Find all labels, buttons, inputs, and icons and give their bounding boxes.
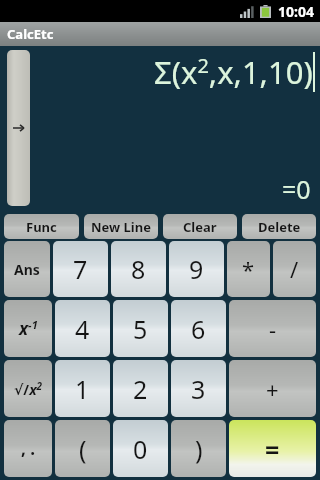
button[interactable]: = bbox=[229, 420, 316, 477]
staticText: * bbox=[242, 254, 255, 284]
staticText: 8 bbox=[131, 252, 146, 286]
staticText: 3 bbox=[191, 372, 206, 406]
staticText: + bbox=[266, 374, 279, 404]
button[interactable]: x-1 bbox=[4, 300, 52, 357]
button[interactable]: 2 bbox=[113, 360, 168, 417]
staticText: Delete bbox=[258, 218, 301, 236]
staticText: / bbox=[290, 254, 299, 284]
button[interactable]: Clear bbox=[163, 214, 237, 239]
staticText: =0 bbox=[282, 172, 311, 206]
staticText: 2 bbox=[133, 372, 148, 406]
button[interactable]: 5 bbox=[113, 300, 168, 357]
staticText: 4 bbox=[75, 312, 90, 346]
button[interactable]: 0 bbox=[113, 420, 168, 477]
button[interactable]: ) bbox=[171, 420, 226, 477]
staticText: √/x2 bbox=[14, 379, 43, 399]
button[interactable]: - bbox=[229, 300, 316, 357]
button[interactable]: ( bbox=[55, 420, 110, 477]
staticText: ) bbox=[195, 432, 203, 466]
button[interactable]: Ans bbox=[4, 241, 50, 297]
staticText: 9 bbox=[189, 252, 204, 286]
staticText: 7 bbox=[73, 252, 88, 286]
staticText: 0 bbox=[133, 432, 148, 466]
button[interactable]: 9 bbox=[169, 241, 224, 297]
staticText: ( bbox=[79, 432, 87, 466]
button[interactable]: Scroll right bbox=[7, 50, 30, 206]
staticText: 1 bbox=[75, 372, 90, 406]
staticText: 10:04 bbox=[278, 2, 314, 21]
button[interactable]: 8 bbox=[111, 241, 166, 297]
staticText: Σ(x2,x,1,10) bbox=[154, 51, 313, 93]
staticText: = bbox=[265, 432, 280, 466]
button[interactable]: , . bbox=[4, 420, 52, 477]
staticText: 5 bbox=[133, 312, 148, 346]
staticText: x-1 bbox=[19, 317, 38, 340]
button[interactable]: Delete bbox=[242, 214, 316, 239]
staticText: , . bbox=[21, 437, 36, 460]
staticText: Func bbox=[26, 218, 57, 236]
staticText: CalcEtc bbox=[7, 25, 54, 43]
button[interactable]: * bbox=[227, 241, 270, 297]
staticText: Clear bbox=[183, 218, 217, 236]
staticText: - bbox=[269, 314, 277, 344]
button[interactable]: 4 bbox=[55, 300, 110, 357]
button[interactable]: √/x2 bbox=[4, 360, 52, 417]
button[interactable]: Func bbox=[4, 214, 79, 239]
button[interactable]: 7 bbox=[53, 241, 108, 297]
staticText: Ans bbox=[14, 260, 40, 279]
button[interactable]: New Line bbox=[84, 214, 158, 239]
button[interactable]: + bbox=[229, 360, 316, 417]
button[interactable]: 1 bbox=[55, 360, 110, 417]
button[interactable]: / bbox=[273, 241, 316, 297]
staticText: 6 bbox=[191, 312, 206, 346]
button[interactable]: 6 bbox=[171, 300, 226, 357]
staticText: New Line bbox=[91, 218, 151, 236]
button[interactable]: 3 bbox=[171, 360, 226, 417]
